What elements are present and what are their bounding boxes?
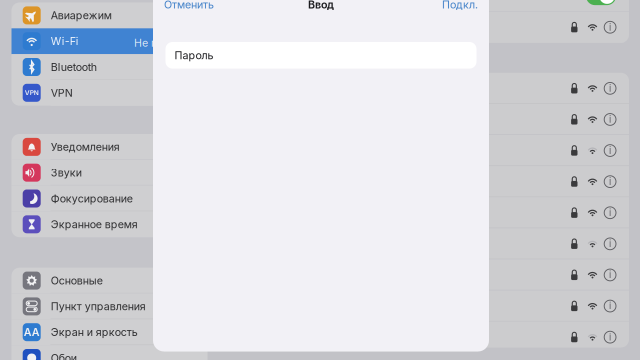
staticText: Wi-Fi xyxy=(51,35,79,48)
button[interactable]: Экранное время xyxy=(11,211,207,237)
button[interactable]: Wi-Fi network, locked xyxy=(470,322,629,353)
staticText: Экранное время xyxy=(51,218,138,231)
button[interactable]: Wi-Fi network, locked xyxy=(470,73,629,104)
staticText: i xyxy=(609,114,611,125)
staticText: i xyxy=(609,300,611,312)
staticText: Пароль xyxy=(174,49,213,62)
button[interactable]: Авиарежим xyxy=(11,2,207,28)
staticText: Не подключено xyxy=(134,36,215,49)
staticText: Ввод xyxy=(308,0,334,11)
staticText: Экран и яркость xyxy=(51,326,138,339)
staticText: VPN xyxy=(25,89,39,97)
button[interactable]: Bluetooth xyxy=(11,54,207,80)
button[interactable]: Основные xyxy=(11,268,207,293)
staticText: i xyxy=(609,269,611,281)
staticText: i xyxy=(609,331,611,343)
button[interactable]: Пункт управления xyxy=(11,293,207,319)
button[interactable]: Wi-Fi network, locked xyxy=(470,197,629,228)
staticText: Bluetooth xyxy=(51,60,97,73)
button[interactable]: Wi-Fi network, locked xyxy=(470,228,629,259)
staticText: i xyxy=(609,83,611,94)
button[interactable]: Wi-Fi network, locked xyxy=(470,166,629,197)
button[interactable]: Wi-Fi network, locked xyxy=(470,135,629,166)
button[interactable]: VPN xyxy=(11,80,207,106)
staticText: i xyxy=(609,176,611,187)
staticText: Авиарежим xyxy=(51,9,112,22)
button[interactable]: Звуки xyxy=(11,160,207,186)
staticText: Основные xyxy=(51,274,103,287)
button[interactable]: AA xyxy=(11,319,207,345)
staticText: i xyxy=(609,238,611,249)
button[interactable]: Wi-Fi network, locked xyxy=(470,12,629,43)
button[interactable]: Обои xyxy=(11,345,207,360)
staticText: VPN xyxy=(51,86,73,99)
staticText: Уведомления xyxy=(51,140,120,153)
staticText: i xyxy=(609,22,611,33)
button[interactable]: Фокусирование xyxy=(11,186,207,211)
button[interactable]: Wi-Fi xyxy=(11,28,207,54)
staticText: i xyxy=(609,145,611,156)
button[interactable]: Уведомления xyxy=(11,134,207,160)
button[interactable]: Отменить xyxy=(164,0,214,11)
staticText: Фокусирование xyxy=(51,192,133,205)
staticText: Подкл. xyxy=(442,0,478,11)
button[interactable]: Wi-Fi network, locked xyxy=(470,104,629,135)
staticText: Пункт управления xyxy=(51,300,146,313)
staticText: Звуки xyxy=(51,166,82,179)
staticText: i xyxy=(609,207,611,218)
button[interactable]: Wi-Fi network, locked xyxy=(470,290,629,322)
staticText: Отменить xyxy=(164,0,214,11)
button[interactable]: Подкл. xyxy=(442,0,478,11)
staticText: Обои xyxy=(51,351,77,360)
button[interactable]: Wi-Fi network, locked xyxy=(470,259,629,290)
staticText: AA xyxy=(24,326,40,339)
